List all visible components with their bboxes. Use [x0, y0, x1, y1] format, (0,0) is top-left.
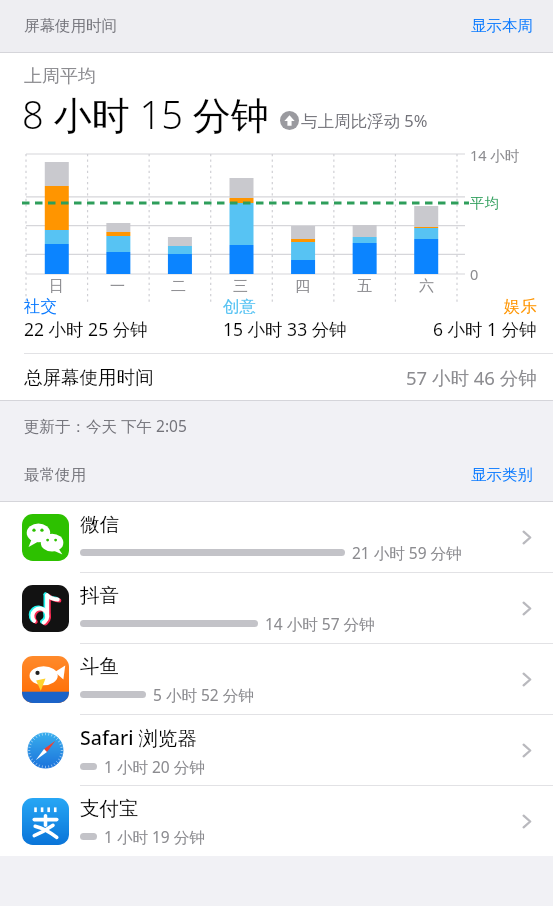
staticText: 6 小时 1 分钟	[433, 317, 537, 341]
staticText: 8 小时 15 分钟	[22, 88, 269, 140]
button[interactable]: 斗鱼	[0, 644, 553, 714]
staticText: 22 小时 25 分钟	[24, 317, 148, 341]
other: 查看 微信 详情	[513, 524, 539, 550]
other: 查看 Safari 浏览器 详情	[513, 737, 539, 763]
staticText: 三	[233, 277, 248, 296]
other: 查看 斗鱼 详情	[513, 666, 539, 692]
staticText: 五	[357, 277, 372, 296]
staticText: 显示类别	[471, 465, 533, 485]
staticText: Safari 浏览器	[80, 724, 198, 751]
staticText: 创意	[223, 296, 256, 317]
button[interactable]: 总屏幕使用时间	[0, 354, 553, 400]
other: 查看 支付宝 详情	[513, 808, 539, 834]
staticText: 屏幕使用时间	[24, 16, 117, 36]
staticText: 57 小时 46 分钟	[406, 365, 537, 390]
staticText: 一	[110, 277, 125, 296]
staticText: 抖音	[80, 583, 119, 608]
staticText: 上周平均	[24, 65, 96, 88]
staticText: 支付宝	[80, 796, 139, 821]
staticText: 5 小时 52 分钟	[153, 684, 254, 705]
staticText: 二	[171, 277, 186, 296]
staticText: 四	[295, 277, 310, 296]
button[interactable]: 支付宝	[0, 786, 553, 856]
staticText: 斗鱼	[80, 654, 119, 679]
staticText: 最常使用	[24, 465, 86, 485]
button[interactable]: 显示类别	[451, 459, 553, 491]
staticText: 显示本周	[471, 16, 533, 36]
staticText: 更新于：今天 下午 2:05	[24, 415, 187, 436]
staticText: 六	[419, 277, 434, 296]
staticText: 日	[49, 277, 64, 296]
staticText: 微信	[80, 512, 119, 537]
staticText: 娱乐	[504, 296, 537, 317]
staticText: 21 小时 59 分钟	[352, 542, 462, 563]
button[interactable]: 微信	[0, 502, 553, 572]
staticText: 平均	[470, 194, 499, 212]
other: 查看 抖音 详情	[513, 595, 539, 621]
staticText: 0	[470, 264, 479, 284]
staticText: 与上周比浮动 5%	[301, 109, 428, 132]
staticText: 总屏幕使用时间	[24, 366, 154, 389]
staticText: 14 小时	[470, 145, 520, 165]
staticText: 社交	[24, 296, 57, 317]
staticText: 15 小时 33 分钟	[223, 317, 347, 341]
staticText: 1 小时 19 分钟	[104, 826, 205, 847]
staticText: 14 小时 57 分钟	[265, 613, 375, 634]
button[interactable]: 显示本周	[451, 6, 553, 46]
staticText: 1 小时 20 分钟	[104, 756, 205, 777]
button[interactable]: Safari 浏览器	[0, 715, 553, 785]
button[interactable]: 抖音	[0, 573, 553, 643]
